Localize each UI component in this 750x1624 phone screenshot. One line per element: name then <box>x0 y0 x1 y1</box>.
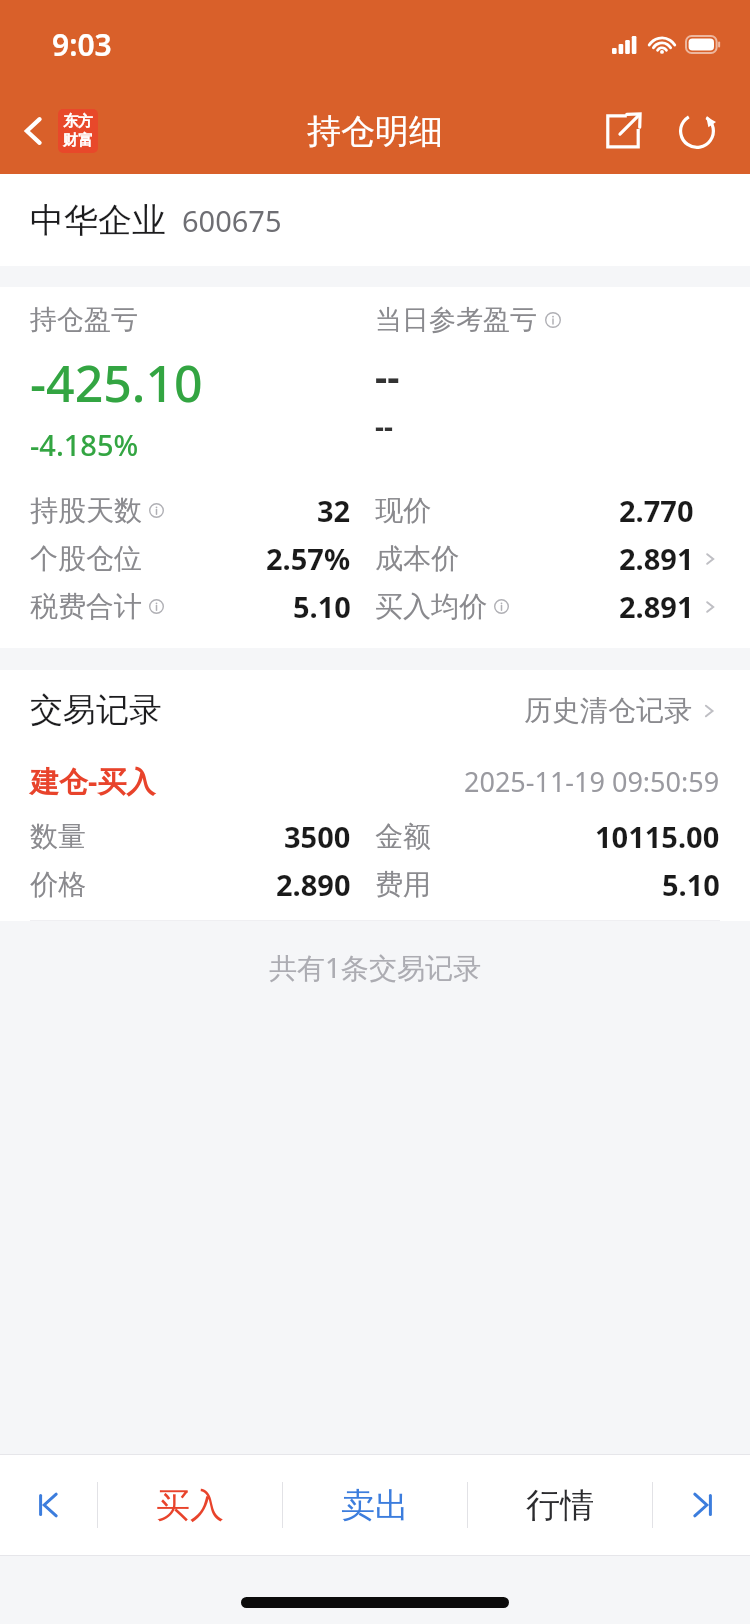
staticText: 交易记录 <box>30 689 162 731</box>
staticText: 2.891 <box>619 587 694 626</box>
staticText: 费用 <box>375 867 431 902</box>
staticText: 金额 <box>375 819 431 854</box>
staticText: 财富 <box>63 131 93 150</box>
staticText: -- <box>375 407 393 445</box>
staticText: 600675 <box>182 201 282 240</box>
staticText: 成本价 <box>375 541 459 576</box>
staticText: 3500 <box>284 817 351 856</box>
staticText: 行情 <box>526 1484 594 1527</box>
staticText: 2.57% <box>266 539 351 578</box>
staticText: 2.891 <box>619 539 694 578</box>
staticText: 数量 <box>30 819 86 854</box>
staticText: 个股仓位 <box>30 541 142 576</box>
staticText: 税费合计 <box>30 589 142 624</box>
button[interactable]: Next <box>653 1455 750 1555</box>
staticText: 2.770 <box>619 491 694 530</box>
button[interactable]: Refresh <box>670 104 724 158</box>
button[interactable]: 行情 <box>468 1455 652 1555</box>
staticText: 持股天数 <box>30 493 142 528</box>
staticText: 历史清仓记录 <box>524 693 692 728</box>
staticText: 10115.00 <box>595 817 720 856</box>
staticText: 2.890 <box>276 865 351 904</box>
button[interactable]: Previous <box>0 1455 97 1555</box>
staticText: -425.10 <box>30 349 203 417</box>
staticText: 9:03 <box>52 24 112 65</box>
button[interactable]: 中华企业 <box>0 174 750 266</box>
staticText: 现价 <box>375 493 431 528</box>
staticText: 32 <box>317 491 351 530</box>
button[interactable]: 成本价 <box>375 539 720 578</box>
staticText: 中华企业 <box>30 199 166 242</box>
staticText: -- <box>375 350 400 402</box>
button[interactable]: 历史清仓记录 <box>524 685 720 736</box>
button[interactable]: 卖出 <box>283 1455 467 1555</box>
staticText: 东方 <box>63 112 93 131</box>
staticText: 5.10 <box>662 865 720 904</box>
staticText: 建仓-买入 <box>30 761 156 801</box>
button[interactable]: 买入 <box>98 1455 282 1555</box>
staticText: 价格 <box>30 867 86 902</box>
staticText: 买入 <box>156 1484 224 1527</box>
staticText: 2025-11-19 09:50:59 <box>464 763 720 800</box>
staticText: 持仓盈亏 <box>30 303 138 337</box>
button[interactable]: 买入均价 <box>375 587 720 626</box>
staticText: 当日参考盈亏 <box>375 303 537 337</box>
staticText: 5.10 <box>293 587 351 626</box>
staticText: 持仓明细 <box>307 110 443 153</box>
staticText: 买入均价 <box>375 589 487 624</box>
staticText: 共有1条交易记录 <box>269 948 482 986</box>
staticText: -4.185% <box>30 425 139 464</box>
button[interactable]: Share <box>596 104 650 158</box>
staticText: 卖出 <box>341 1484 409 1527</box>
button[interactable]: Back <box>0 101 108 161</box>
